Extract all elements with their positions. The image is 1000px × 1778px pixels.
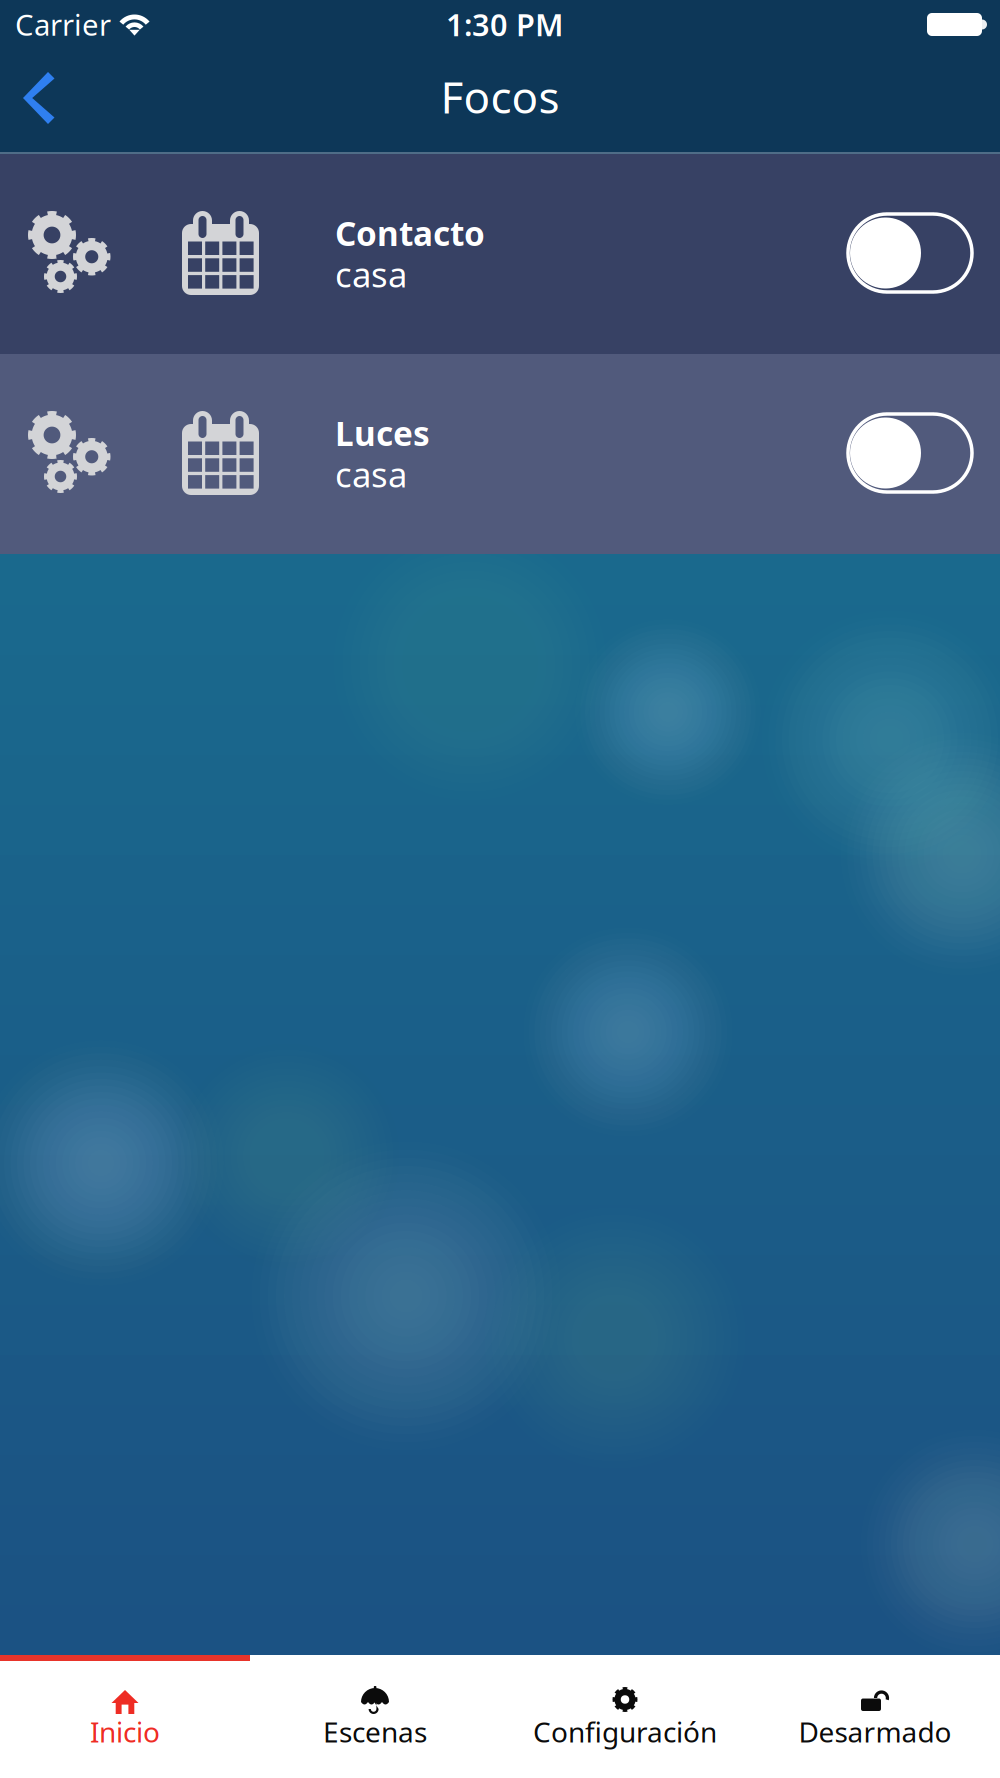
button[interactable]: Contacto [0, 154, 1000, 354]
staticText: 1:30 PM [446, 4, 563, 45]
staticText: Carrier [15, 5, 111, 44]
button[interactable]: Luces encendido [826, 394, 994, 512]
staticText: casa [335, 451, 407, 497]
button[interactable]: Luces [0, 354, 1000, 554]
button[interactable]: Escenas [250, 1661, 500, 1778]
staticText: Desarmado [798, 1713, 951, 1750]
button[interactable]: Desarmado [750, 1661, 1000, 1778]
staticText: casa [335, 251, 407, 297]
staticText: Focos [440, 67, 559, 126]
button[interactable]: Back [0, 53, 104, 152]
button[interactable]: Contacto encendido [826, 194, 994, 312]
staticText: Contacto [335, 211, 485, 255]
staticText: Configuración [533, 1713, 717, 1750]
button[interactable]: Inicio [0, 1661, 250, 1778]
staticText: Inicio [90, 1713, 160, 1750]
staticText: Luces [335, 411, 430, 455]
button[interactable]: Configuración [500, 1661, 750, 1778]
staticText: Escenas [323, 1713, 427, 1750]
